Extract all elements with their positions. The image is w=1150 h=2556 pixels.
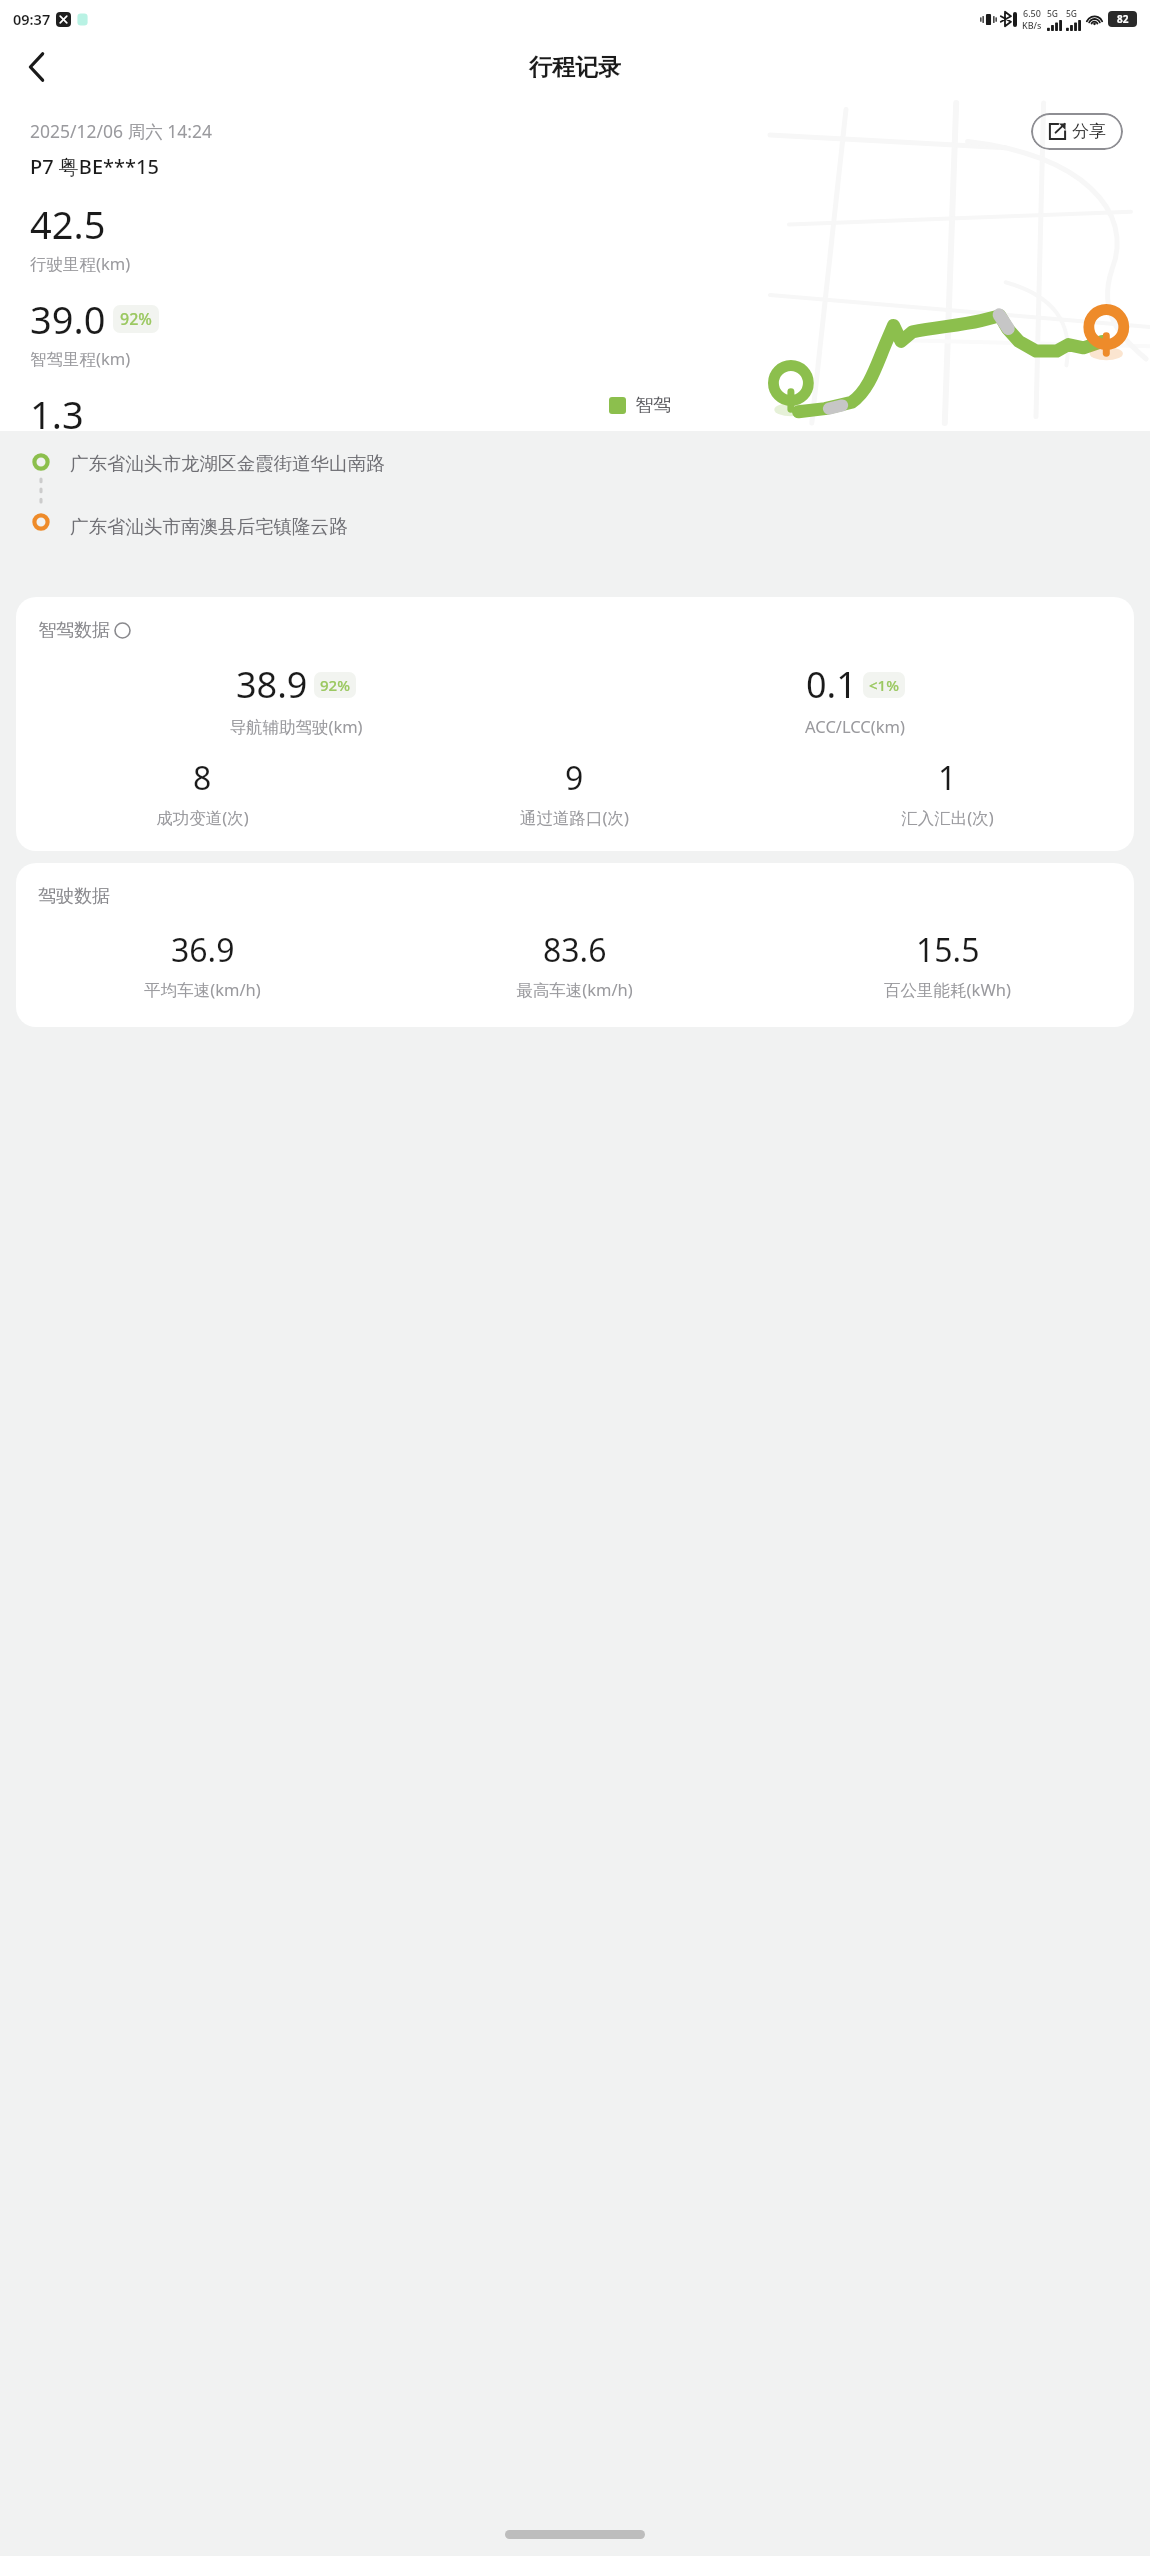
staticText: 1 — [938, 756, 957, 800]
staticText: 2025/12/06 周六 14:24 — [30, 119, 212, 143]
staticText: 42.5 — [30, 198, 106, 250]
staticText: 行程记录 — [529, 53, 621, 82]
staticText: 36.9 — [171, 928, 235, 972]
staticText: 39.0 — [30, 293, 106, 345]
staticText: ACC/LCC(km) — [805, 715, 905, 737]
staticText: 1.3 — [30, 388, 84, 431]
staticText: 智驾数据 — [38, 619, 110, 642]
staticText: 智驾 — [635, 394, 671, 417]
staticText: 15.5 — [916, 928, 980, 972]
button[interactable]: 分享 — [1031, 113, 1123, 150]
staticText: 汇入汇出(次) — [901, 806, 994, 829]
staticText: P7 粤BE***15 — [30, 153, 159, 180]
staticText: 平均车速(km/h) — [144, 978, 261, 1001]
staticText: 智驾里程(km) — [30, 347, 131, 370]
staticText: 通过道路口(次) — [520, 806, 629, 829]
staticText: 导航辅助驾驶(km) — [229, 715, 363, 738]
button[interactable]: 驾驶数据 — [16, 863, 1134, 1027]
staticText: 驾驶数据 — [38, 885, 110, 908]
staticText: 百公里能耗(kWh) — [884, 978, 1011, 1001]
button[interactable]: 智驾数据 — [16, 597, 1134, 851]
staticText: 5G — [1047, 8, 1059, 20]
button[interactable]: Back — [8, 39, 64, 95]
staticText: 广东省汕头市龙湖区金霞街道华山南路 — [70, 452, 385, 475]
staticText: 5G — [1066, 8, 1078, 20]
staticText: 8 — [193, 756, 212, 800]
staticText: 38.9 — [236, 660, 308, 709]
staticText: 0.1 — [806, 660, 857, 709]
staticText: 最高车速(km/h) — [516, 978, 633, 1001]
staticText: <1% — [869, 675, 899, 695]
staticText: 83.6 — [543, 928, 607, 972]
staticText: 92% — [120, 308, 152, 330]
staticText: 82 — [1117, 12, 1129, 26]
staticText: 分享 — [1072, 121, 1106, 142]
staticText: KB/s — [1022, 19, 1042, 31]
staticText: 6.50 — [1023, 7, 1041, 19]
staticText: 行驶里程(km) — [30, 252, 131, 275]
staticText: 92% — [320, 675, 350, 695]
staticText: 09:37 — [13, 9, 51, 29]
staticText: 广东省汕头市南澳县后宅镇隆云路 — [70, 515, 348, 538]
staticText: 9 — [565, 756, 584, 800]
staticText: 成功变道(次) — [156, 806, 249, 829]
